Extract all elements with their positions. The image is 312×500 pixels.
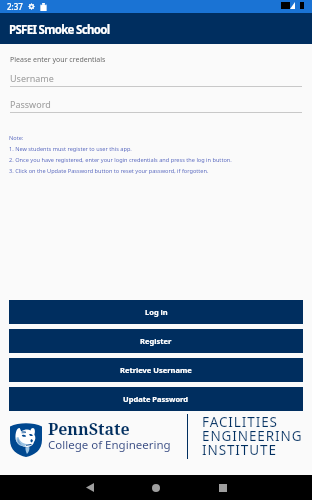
staticText: 3. Click on the Update Password button t… — [9, 167, 209, 175]
staticText: PSFEI Smoke School — [9, 22, 110, 38]
staticText: 2:37 — [7, 1, 23, 12]
button[interactable]: Back — [77, 475, 102, 500]
staticText: College of Engineering — [48, 437, 171, 453]
button[interactable]: Log in — [9, 300, 303, 324]
staticText: Retrieve Username — [120, 365, 192, 375]
button[interactable]: Register — [9, 329, 303, 353]
staticText: 1. New students must register to user th… — [9, 145, 132, 153]
staticText: ENGINEERING — [202, 427, 303, 445]
staticText: FACILITIES — [202, 413, 278, 431]
staticText: Register — [140, 336, 172, 346]
button[interactable]: Recents — [210, 475, 235, 500]
staticText: Note: — [9, 134, 24, 142]
button[interactable]: Home — [143, 475, 168, 500]
staticText: Log in — [145, 307, 168, 317]
staticText: PennState — [48, 418, 130, 440]
staticText: Username — [10, 72, 54, 84]
button[interactable]: Username — [10, 72, 302, 87]
staticText: Please enter your credentials — [10, 55, 106, 65]
staticText: Update Password — [123, 394, 189, 404]
button[interactable]: Password — [10, 98, 302, 113]
button[interactable]: Retrieve Username — [9, 358, 303, 382]
staticText: 2. Once you have registered, enter your … — [9, 156, 232, 164]
staticText: Password — [10, 98, 51, 110]
staticText: INSTITUTE — [202, 441, 277, 459]
button[interactable]: Update Password — [9, 387, 303, 411]
